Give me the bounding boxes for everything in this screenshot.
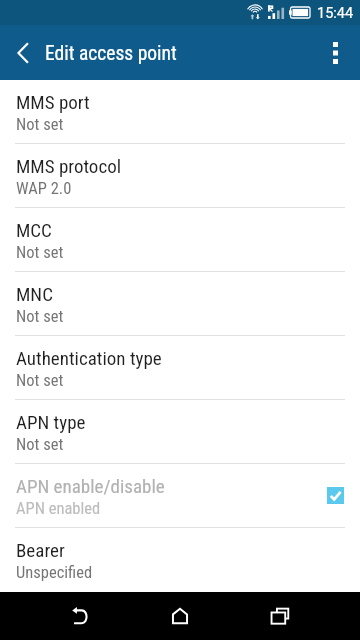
- staticText: Not set: [16, 243, 64, 262]
- staticText: MMS port: [16, 91, 90, 113]
- button[interactable]: APN enable/disable: [0, 464, 360, 527]
- button[interactable]: MCC: [0, 208, 360, 271]
- button[interactable]: MMS protocol: [0, 144, 360, 207]
- button[interactable]: Home: [150, 592, 210, 640]
- staticText: Authentication type: [16, 347, 162, 369]
- staticText: Edit access point: [45, 42, 177, 65]
- staticText: APN type: [16, 411, 86, 433]
- staticText: Unspecified: [16, 563, 93, 582]
- button[interactable]: MNC: [0, 272, 360, 335]
- staticText: APN enable/disable: [16, 475, 165, 497]
- staticText: Not set: [16, 435, 64, 454]
- staticText: Not set: [16, 371, 64, 390]
- button[interactable]: Back: [0, 25, 46, 80]
- staticText: WAP 2.0: [16, 179, 72, 198]
- button[interactable]: MMS port: [0, 80, 360, 143]
- button[interactable]: APN type: [0, 400, 360, 463]
- staticText: Bearer: [16, 539, 65, 561]
- staticText: Not set: [16, 307, 64, 326]
- button[interactable]: Bearer: [0, 528, 360, 591]
- staticText: MMS protocol: [16, 155, 122, 177]
- button[interactable]: More options: [311, 25, 360, 80]
- staticText: APN enabled: [16, 499, 101, 518]
- staticText: 15:44: [317, 5, 354, 22]
- staticText: MNC: [16, 283, 53, 305]
- staticText: Not set: [16, 115, 64, 134]
- button[interactable]: Authentication type: [0, 336, 360, 399]
- staticText: MCC: [16, 219, 52, 241]
- button[interactable]: Recent apps: [250, 592, 310, 640]
- button[interactable]: Back: [50, 592, 110, 640]
